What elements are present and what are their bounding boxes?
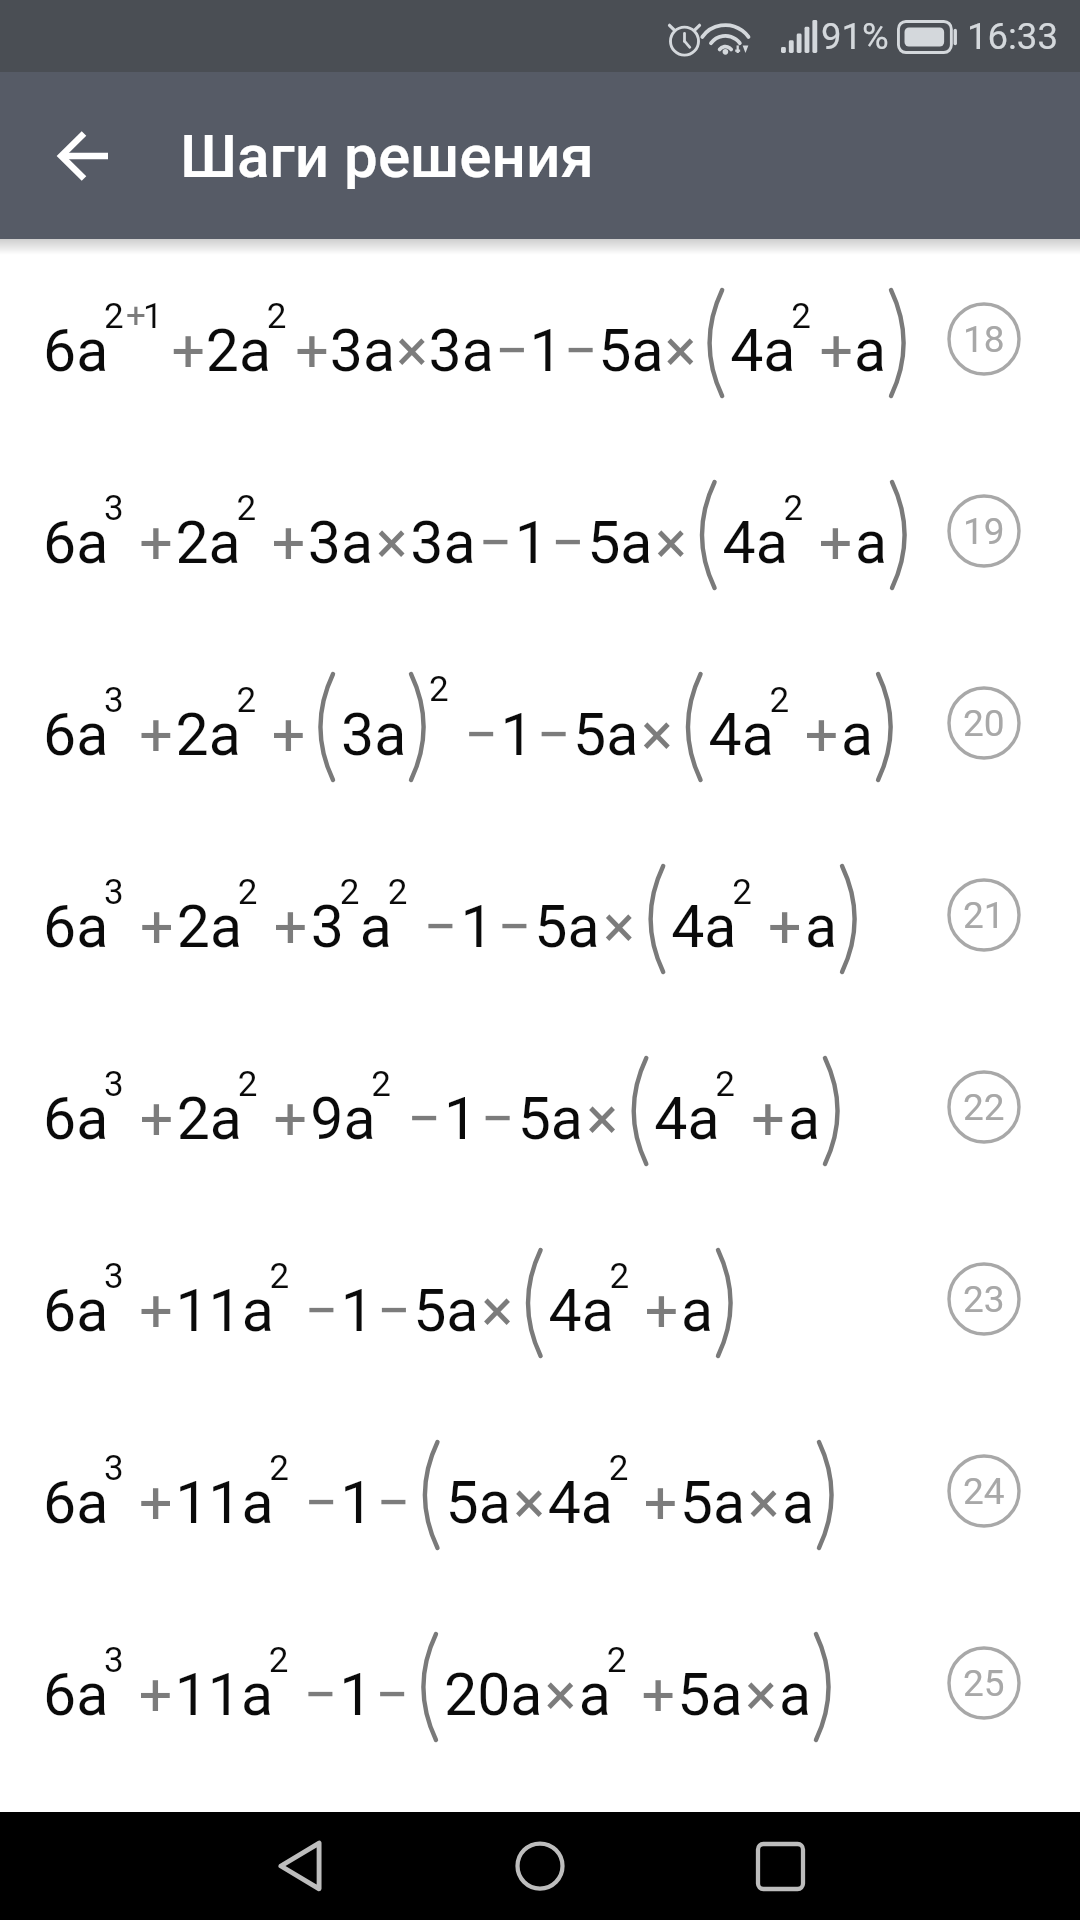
button[interactable] bbox=[0, 1009, 1080, 1201]
button[interactable] bbox=[0, 241, 1080, 433]
staticText: 16:33 bbox=[967, 15, 1058, 58]
staticText: Шаги решения bbox=[180, 121, 594, 191]
staticText: 91% bbox=[821, 15, 889, 58]
button[interactable] bbox=[0, 1585, 1080, 1777]
button[interactable]: Back bbox=[0, 72, 180, 239]
button[interactable] bbox=[0, 1201, 1080, 1393]
button[interactable]: Back bbox=[240, 1812, 360, 1920]
button[interactable] bbox=[0, 433, 1080, 625]
button[interactable] bbox=[0, 1393, 1080, 1585]
button[interactable] bbox=[0, 817, 1080, 1009]
button[interactable]: Recent apps bbox=[720, 1812, 840, 1920]
button[interactable] bbox=[0, 625, 1080, 817]
button[interactable]: Home bbox=[480, 1812, 600, 1920]
